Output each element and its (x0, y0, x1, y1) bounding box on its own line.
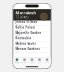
staticText: Menara Gardens (15, 47, 39, 51)
staticText: Browse (21, 61, 27, 63)
button[interactable]: Trips (36, 57, 43, 63)
staticText: 12 places (15, 16, 28, 19)
staticText: Saved (29, 61, 34, 63)
staticText: Historic site (15, 29, 22, 31)
button[interactable]: Home (13, 57, 21, 63)
staticText: Main square (15, 24, 24, 26)
staticText: Majorelle Garden (15, 31, 41, 35)
button[interactable]: Bahia Palace (13, 26, 51, 31)
button[interactable]: Menara Gardens (13, 47, 51, 53)
staticText: Mosque (15, 40, 21, 42)
button[interactable]: Saved (28, 57, 36, 63)
staticText: Home (15, 61, 19, 63)
staticText: Trips (37, 61, 41, 63)
staticText: Jemaa el-Fnaa (15, 20, 37, 24)
staticText: Botanical (15, 35, 21, 37)
button[interactable]: Medina Souks (13, 42, 51, 47)
staticText: Marrakesh (15, 10, 36, 15)
button[interactable]: Koutoubia (13, 37, 51, 42)
staticText: Market (15, 46, 20, 47)
button[interactable]: Browse (21, 57, 28, 63)
button[interactable]: More (43, 57, 51, 63)
staticText: Koutoubia (15, 36, 31, 40)
staticText: Bahia Palace (15, 26, 35, 29)
staticText: More (45, 61, 49, 63)
button[interactable]: Jemaa el-Fnaa (13, 20, 51, 26)
button[interactable]: Majorelle Garden (13, 31, 51, 37)
staticText: Medina Souks (15, 42, 35, 45)
